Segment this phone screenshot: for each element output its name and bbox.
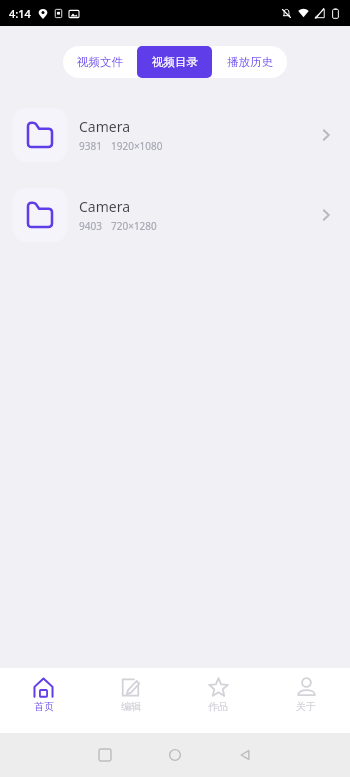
- button[interactable]: Open folder: [312, 201, 340, 229]
- staticText: 播放历史: [227, 55, 273, 69]
- button[interactable]: Back: [227, 737, 263, 773]
- button[interactable]: 首页: [0, 668, 87, 733]
- button[interactable]: Home: [157, 737, 193, 773]
- staticText: 视频文件: [77, 55, 123, 69]
- staticText: 编辑: [121, 700, 141, 713]
- button[interactable]: Open folder: [312, 121, 340, 149]
- button[interactable]: 视频目录: [137, 46, 212, 78]
- staticText: Camera: [79, 117, 131, 136]
- button[interactable]: 播放历史: [212, 46, 287, 78]
- button[interactable]: Camera: [0, 95, 350, 175]
- staticText: 关于: [296, 700, 316, 713]
- button[interactable]: Camera: [0, 175, 350, 255]
- staticText: 首页: [34, 700, 54, 713]
- button[interactable]: Recents: [87, 737, 123, 773]
- staticText: 4:14: [9, 6, 31, 21]
- staticText: Camera: [79, 197, 131, 216]
- button[interactable]: 作品: [174, 668, 262, 733]
- button[interactable]: 关于: [262, 668, 350, 733]
- staticText: 作品: [208, 700, 228, 713]
- staticText: 9403: [79, 219, 102, 233]
- button[interactable]: 编辑: [87, 668, 174, 733]
- staticText: 720×1280: [111, 219, 157, 233]
- staticText: 视频目录: [152, 55, 198, 69]
- staticText: 1920×1080: [111, 139, 163, 153]
- staticText: 9381: [79, 139, 102, 153]
- button[interactable]: 视频文件: [63, 46, 137, 78]
